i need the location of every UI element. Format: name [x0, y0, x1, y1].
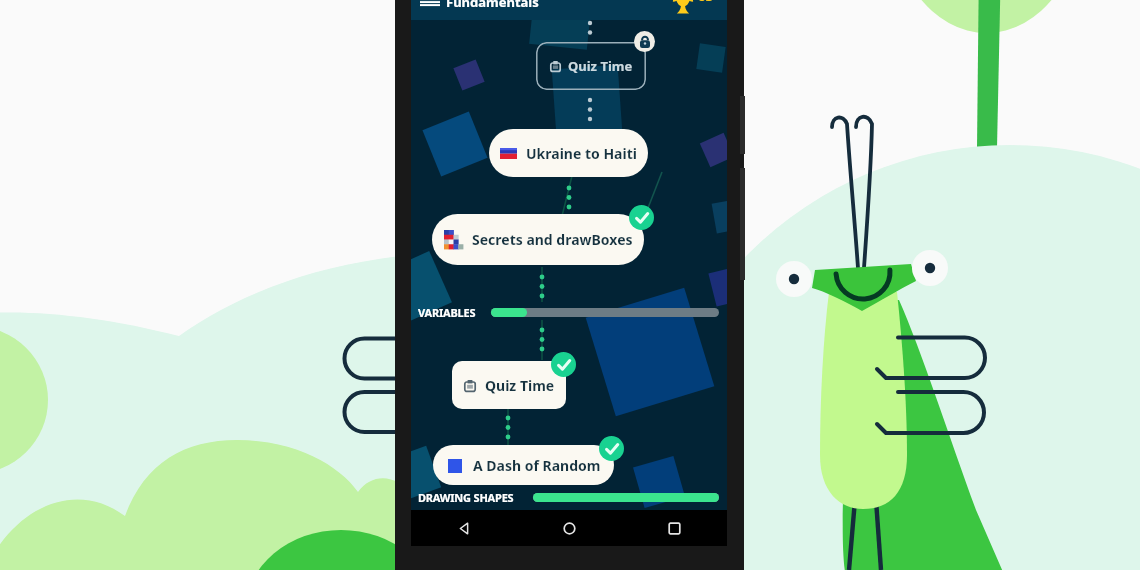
staticText: VARIABLES	[418, 305, 476, 320]
staticText: Ukraine to Haiti	[526, 144, 637, 163]
button[interactable]: Home	[517, 510, 622, 546]
button[interactable]: Quiz Time	[452, 361, 566, 409]
button[interactable]: Secrets and drawBoxes	[432, 214, 644, 265]
button[interactable]: Menu	[420, 0, 440, 12]
button[interactable]: Quiz Time	[536, 42, 646, 90]
button[interactable]: Back	[411, 510, 517, 546]
staticText: Quiz Time	[485, 376, 555, 395]
staticText: DRAWING SHAPES	[418, 490, 514, 505]
button[interactable]: A Dash of Random	[433, 445, 614, 485]
staticText: Secrets and drawBoxes	[472, 230, 633, 249]
staticText: 63	[698, 0, 713, 5]
staticText: Quiz Time	[568, 57, 633, 75]
button[interactable]: Locked	[634, 31, 655, 52]
button[interactable]: Completed	[599, 436, 624, 461]
staticText: A Dash of Random	[473, 456, 601, 475]
button[interactable]: Ukraine to Haiti	[489, 129, 648, 177]
button[interactable]: Completed	[629, 205, 654, 230]
button[interactable]: Recents	[622, 510, 727, 546]
staticText: Fundamentals	[446, 0, 539, 11]
button[interactable]: Completed	[551, 352, 576, 377]
button[interactable]: Points	[669, 0, 713, 15]
